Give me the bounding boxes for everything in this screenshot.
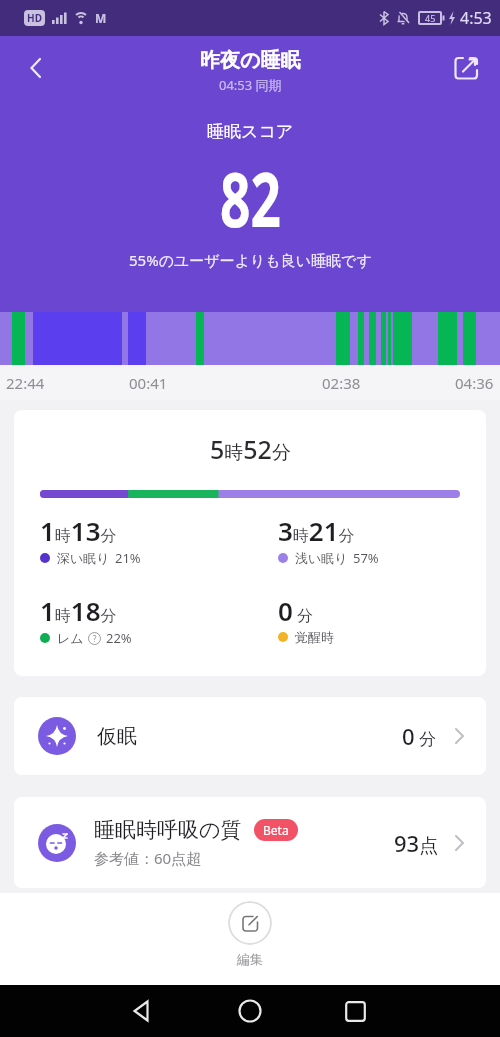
staticText: 覚醒時 xyxy=(295,629,334,645)
staticText: 00:41 xyxy=(129,373,168,393)
staticText: 0 分 xyxy=(278,593,314,628)
staticText: 21% xyxy=(115,549,141,567)
staticText: 昨夜の睡眠 xyxy=(200,48,301,73)
staticText: 5時52分 xyxy=(210,432,291,466)
staticText: 1時18分 xyxy=(40,593,117,628)
staticText: 1時13分 xyxy=(40,513,117,548)
staticText: 3時21分 xyxy=(278,513,355,548)
staticText: 55%のユーザーよりも良い睡眠です xyxy=(129,250,372,270)
button[interactable] xyxy=(16,48,56,88)
button[interactable] xyxy=(120,989,164,1033)
staticText: 仮眠 xyxy=(97,724,137,749)
staticText: 02:38 xyxy=(322,373,361,393)
staticText: Beta xyxy=(263,822,289,838)
button[interactable] xyxy=(444,46,488,90)
staticText: 22% xyxy=(106,629,132,647)
staticText: 82 xyxy=(220,146,281,250)
staticText: 4:53 xyxy=(460,7,492,29)
button[interactable] xyxy=(228,901,272,945)
staticText: HD xyxy=(27,11,42,25)
staticText: 45 xyxy=(425,12,436,24)
staticText: ? xyxy=(93,633,97,644)
staticText: 睡眠時呼吸の質 xyxy=(94,817,242,843)
staticText: 睡眠スコア xyxy=(207,121,294,142)
button[interactable]: 仮眠 xyxy=(14,697,486,775)
staticText: 93点 xyxy=(394,828,439,858)
staticText: M xyxy=(95,10,107,26)
staticText: 0 分 xyxy=(402,721,437,751)
staticText: 22:44 xyxy=(6,373,45,393)
staticText: 04:36 xyxy=(455,373,494,393)
button[interactable] xyxy=(228,989,272,1033)
staticText: 04:53 同期 xyxy=(219,76,282,94)
staticText: レム xyxy=(57,630,84,646)
staticText: 編集 xyxy=(237,951,263,967)
staticText: 57% xyxy=(353,549,379,567)
button[interactable] xyxy=(333,989,377,1033)
staticText: 深い眠り xyxy=(57,550,110,566)
button[interactable]: 睡眠時呼吸の質 xyxy=(14,797,486,888)
staticText: 浅い眠り xyxy=(295,550,348,566)
staticText: 参考値：60点超 xyxy=(94,848,202,868)
